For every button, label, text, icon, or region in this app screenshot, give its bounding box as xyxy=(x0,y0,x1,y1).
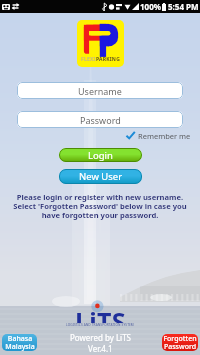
button[interactable]: Password xyxy=(17,111,183,128)
button[interactable]: Login xyxy=(59,148,142,162)
button[interactable]: Username xyxy=(17,82,183,99)
staticText: Powered by LiTS xyxy=(70,332,131,343)
staticText: LiTS xyxy=(75,304,126,323)
staticText: Password xyxy=(80,114,121,126)
button[interactable]: Remember me xyxy=(126,129,191,142)
staticText: Bahasa Malaysia xyxy=(5,334,35,351)
staticText: Username xyxy=(78,85,122,97)
button[interactable]: Forgotten Password xyxy=(162,334,198,351)
staticText: 100% xyxy=(140,1,161,12)
staticText: LOGISTICS AND TRANSPORTATION SYSTEM xyxy=(66,323,134,327)
staticText: New User xyxy=(79,170,123,183)
staticText: FLEXI xyxy=(81,56,96,63)
staticText: Login xyxy=(88,149,113,162)
staticText: Forgotten Password xyxy=(163,334,197,351)
staticText: Remember me xyxy=(138,131,191,141)
staticText: Ver.4.1 xyxy=(88,343,113,354)
button[interactable]: New User xyxy=(59,169,142,184)
button[interactable]: Bahasa Malaysia xyxy=(2,334,37,351)
staticText: Please login or register with new userna… xyxy=(0,192,200,221)
staticText: PARKING xyxy=(96,56,120,63)
staticText: 5:54 PM xyxy=(168,1,199,12)
